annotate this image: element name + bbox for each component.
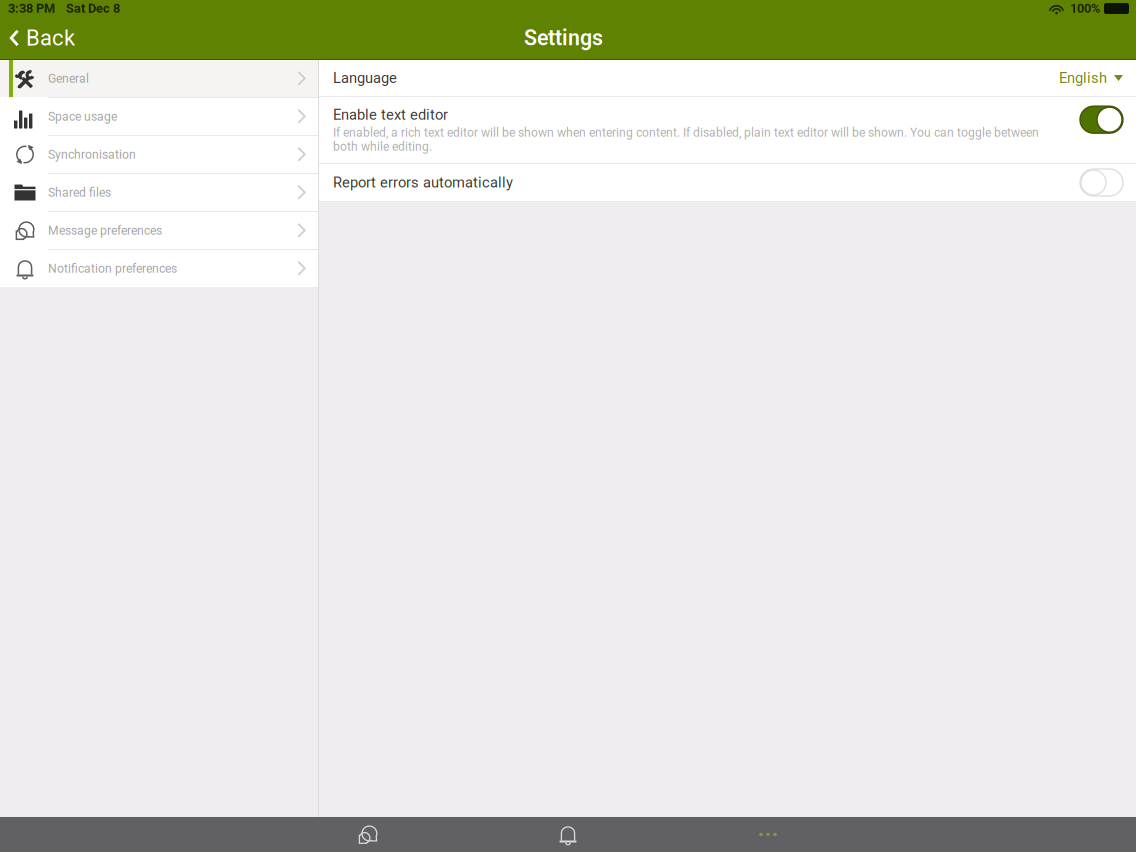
button[interactable]: Space usage: [0, 98, 318, 135]
button[interactable]: Synchronisation: [0, 136, 318, 173]
staticText: Back: [26, 25, 75, 51]
button[interactable]: General: [0, 60, 318, 97]
staticText: 3:38 PM: [8, 1, 55, 16]
button[interactable]: Message preferences: [0, 212, 318, 249]
staticText: Language: [333, 69, 397, 87]
staticText: Settings: [524, 25, 603, 50]
button[interactable]: Notifications: [468, 817, 668, 852]
button[interactable]: Enabled: [1080, 106, 1123, 133]
staticText: Enable text editor: [333, 106, 448, 123]
button[interactable]: Notification preferences: [0, 250, 318, 287]
button[interactable]: Language: [319, 60, 1136, 96]
staticText: Report errors automatically: [333, 174, 513, 191]
staticText: If enabled, a rich text editor will be s…: [333, 125, 1039, 154]
staticText: Notification preferences: [48, 261, 177, 276]
staticText: Sat Dec 8: [66, 1, 120, 16]
staticText: Shared files: [48, 185, 111, 200]
staticText: Message preferences: [48, 223, 162, 238]
staticText: Space usage: [48, 109, 117, 124]
button[interactable]: Shared files: [0, 174, 318, 211]
staticText: English: [1059, 69, 1107, 87]
staticText: Synchronisation: [48, 147, 136, 162]
button[interactable]: Back: [0, 17, 87, 59]
button[interactable]: Messages: [268, 817, 468, 852]
staticText: 100%: [1070, 1, 1100, 16]
button[interactable]: More: [668, 817, 868, 852]
button[interactable]: Disabled: [1080, 169, 1123, 196]
staticText: General: [48, 71, 89, 86]
